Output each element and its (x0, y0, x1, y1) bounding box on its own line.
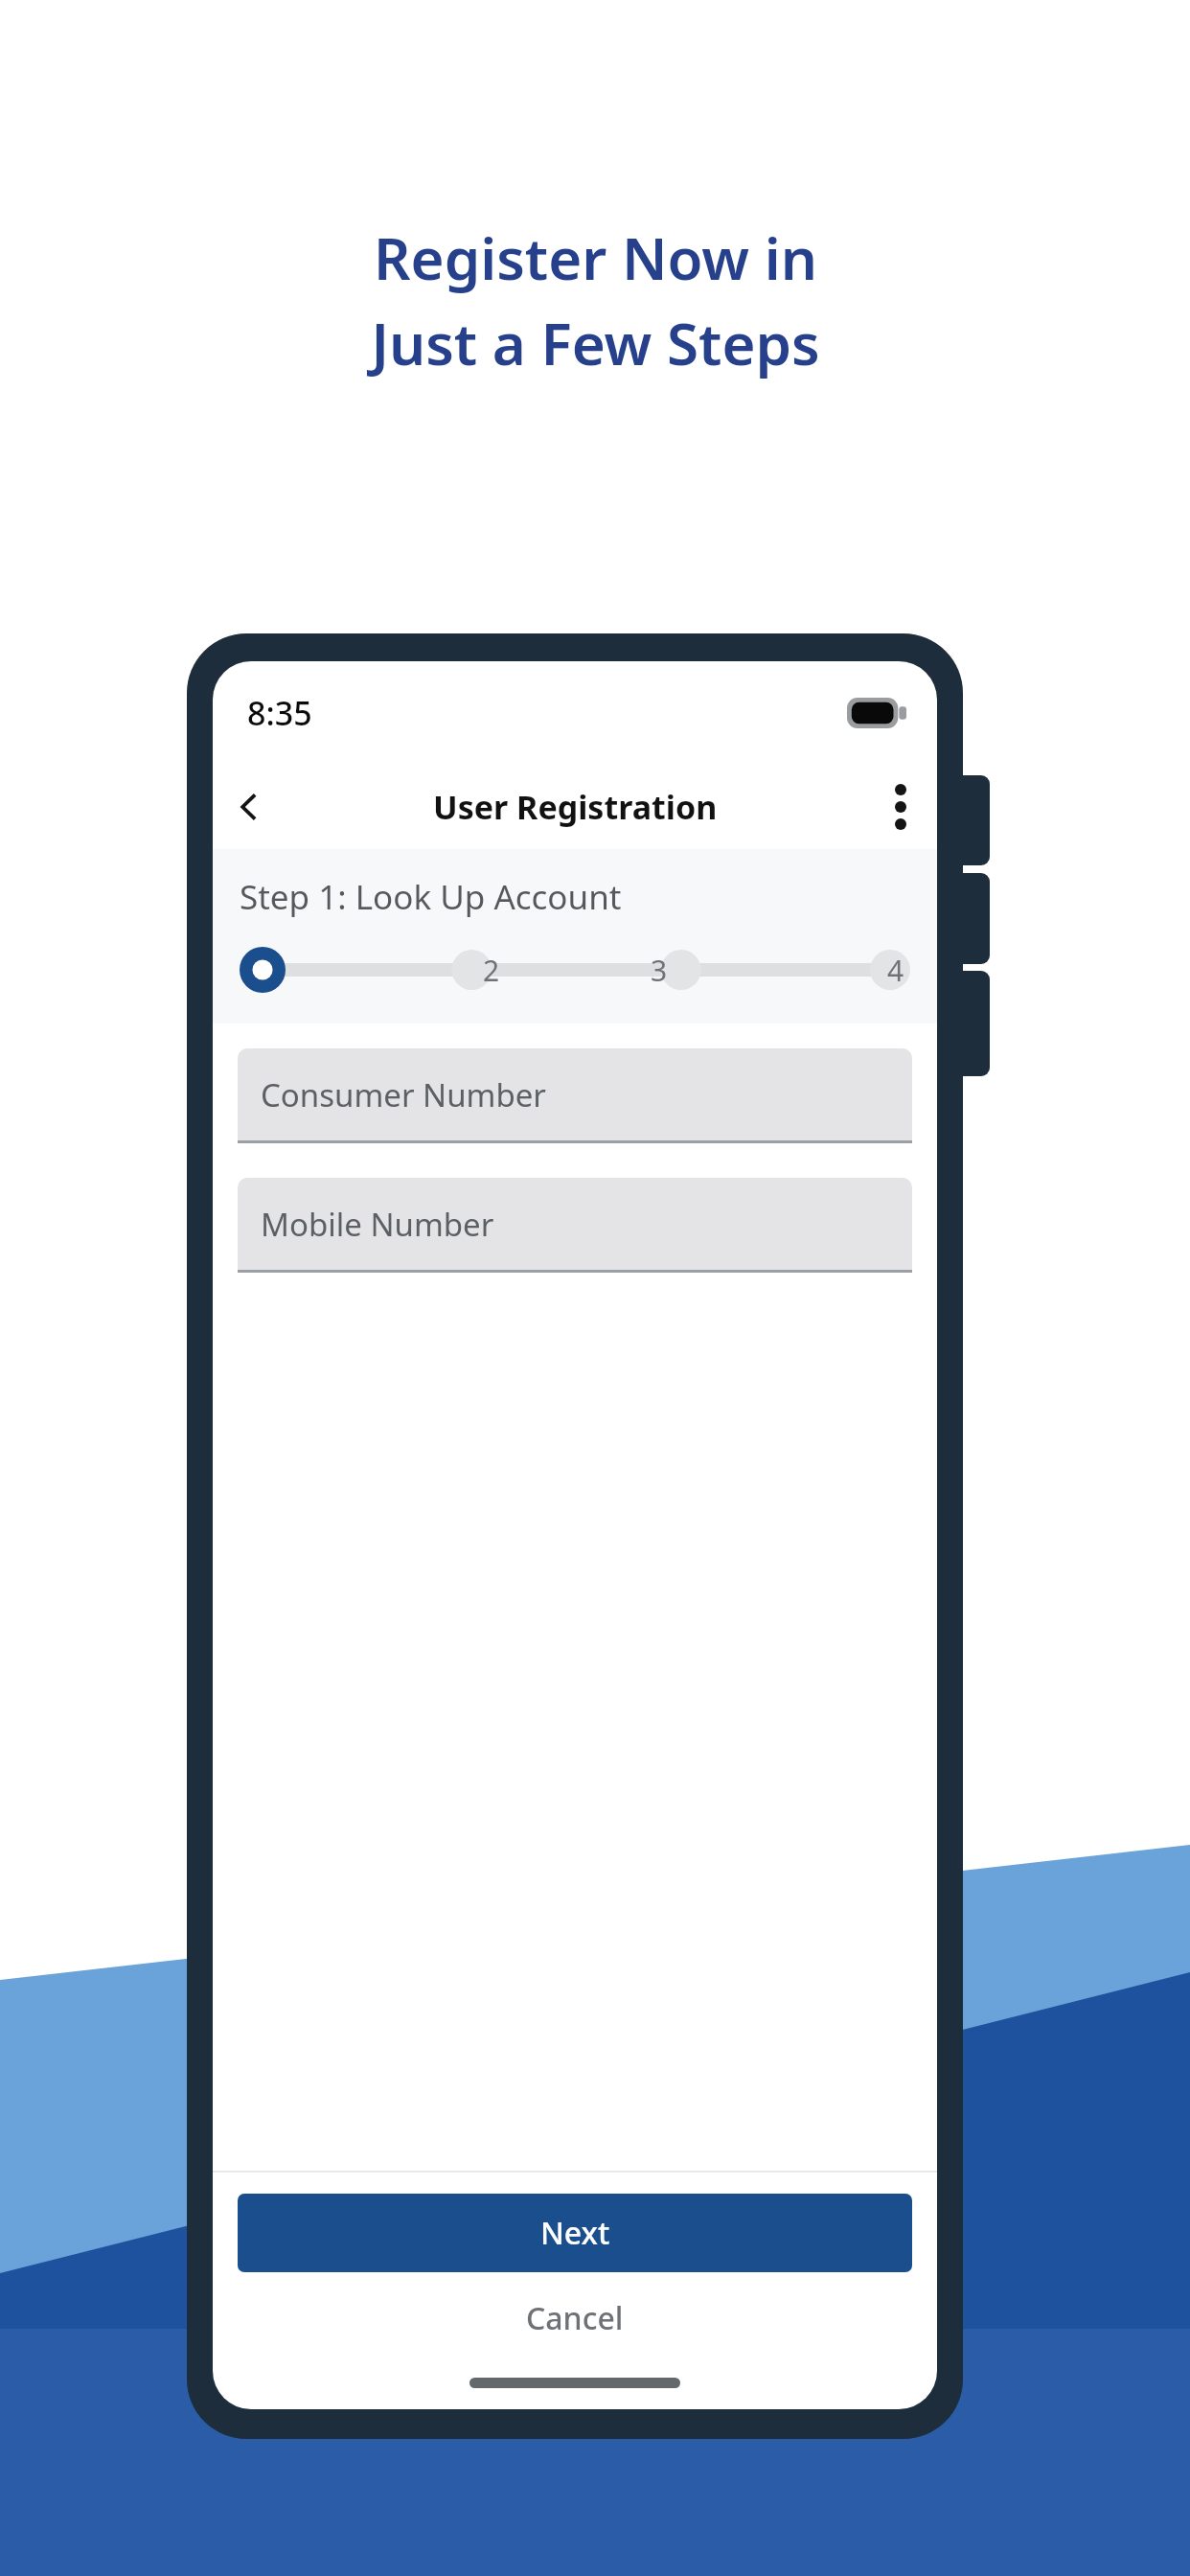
staticText: 8:35 (247, 691, 312, 735)
staticText: Mobile Number (261, 1203, 494, 1246)
staticText: Register Now in (374, 218, 817, 297)
button[interactable]: More options (864, 770, 937, 843)
staticText: Next (540, 2212, 610, 2254)
staticText: 2 (483, 951, 500, 990)
staticText: Consumer Number (261, 1073, 546, 1116)
button[interactable]: Back (213, 770, 286, 843)
staticText: 4 (887, 951, 904, 990)
button[interactable]: Consumer Number (238, 1048, 912, 1143)
button[interactable]: Next (238, 2194, 912, 2272)
staticText: Just a Few Steps (371, 304, 820, 382)
staticText: User Registration (433, 785, 718, 829)
staticText: Step 1: Look Up Account (240, 874, 622, 920)
button[interactable]: Cancel (213, 2272, 937, 2364)
staticText: 3 (651, 951, 668, 990)
button[interactable]: Mobile Number (238, 1178, 912, 1273)
staticText: Cancel (526, 2297, 624, 2339)
other: Battery full (847, 698, 906, 728)
